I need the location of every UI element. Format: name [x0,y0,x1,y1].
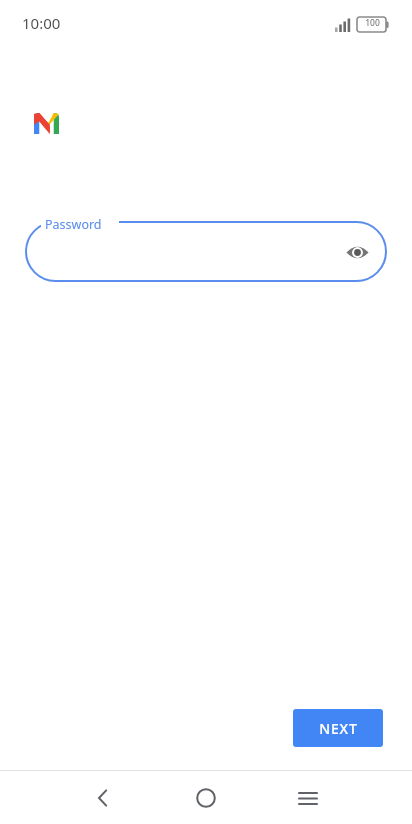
button[interactable]: NEXT [293,709,383,747]
button[interactable] [0,0,412,824]
staticText: 100 [365,17,380,29]
button[interactable]: Menu [284,772,332,824]
button[interactable]: Home [182,772,230,824]
staticText: 10:00 [22,13,61,33]
staticText: Password [45,216,102,233]
staticText: NEXT [319,719,358,738]
button[interactable]: Show password [339,234,375,270]
button[interactable]: Back [79,772,127,824]
